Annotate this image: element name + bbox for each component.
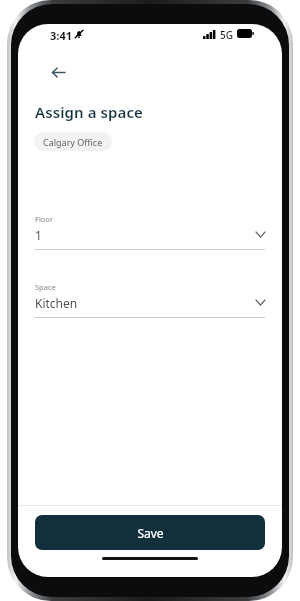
button[interactable]: Calgary Office bbox=[34, 132, 112, 151]
staticText: Space bbox=[35, 282, 56, 292]
staticText: Floor bbox=[35, 214, 53, 224]
staticText: Kitchen bbox=[35, 295, 78, 311]
staticText: Assign a space bbox=[35, 102, 143, 122]
button[interactable]: Space dropdown bbox=[35, 282, 265, 324]
staticText: Save bbox=[137, 525, 164, 541]
button[interactable]: Back bbox=[42, 56, 74, 88]
staticText: 1 bbox=[35, 227, 42, 243]
button[interactable]: Save bbox=[35, 515, 265, 550]
staticText: Calgary Office bbox=[43, 136, 103, 148]
button[interactable]: Floor dropdown bbox=[35, 214, 265, 256]
staticText: 3:41 bbox=[50, 28, 72, 43]
staticText: 5G bbox=[220, 28, 233, 42]
